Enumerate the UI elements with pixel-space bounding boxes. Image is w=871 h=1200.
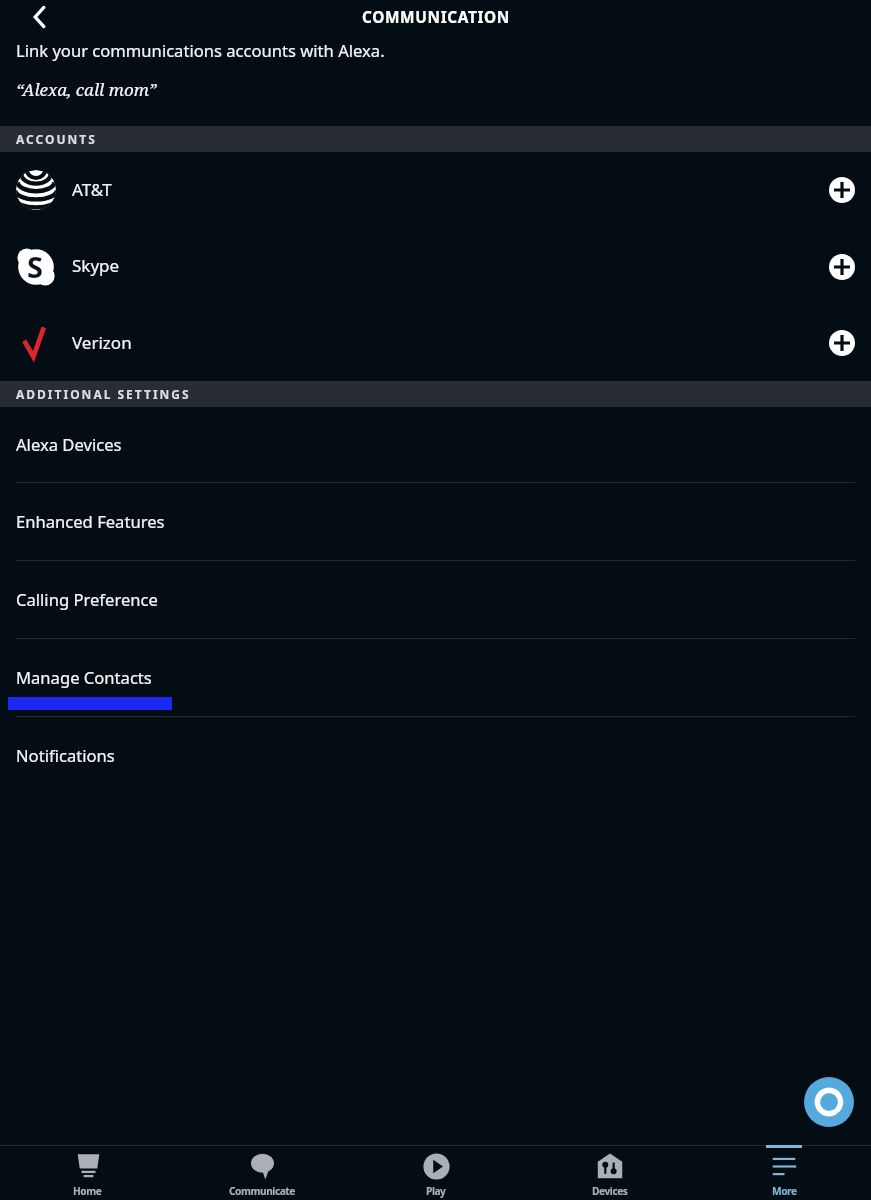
- staticText: “Alexa, call mom”: [16, 78, 157, 101]
- staticText: Skype: [72, 254, 120, 277]
- staticText: ACCOUNTS: [16, 131, 97, 147]
- button[interactable]: Devices: [523, 1146, 697, 1200]
- button[interactable]: Enhanced Features: [0, 483, 871, 561]
- button[interactable]: AT&T: [0, 152, 871, 228]
- staticText: Manage Contacts: [16, 666, 152, 689]
- button[interactable]: Add AT&T: [829, 177, 855, 203]
- staticText: AT&T: [72, 178, 112, 201]
- button[interactable]: More: [697, 1146, 871, 1200]
- staticText: Alexa Devices: [16, 433, 122, 456]
- button[interactable]: Verizon: [0, 305, 871, 381]
- button[interactable]: Notifications: [0, 717, 871, 795]
- staticText: Communicate: [229, 1184, 295, 1198]
- button[interactable]: Back: [20, 0, 60, 34]
- staticText: Enhanced Features: [16, 510, 165, 533]
- button[interactable]: Calling Preference: [0, 561, 871, 639]
- staticText: Calling Preference: [16, 588, 158, 611]
- button[interactable]: Alexa Devices: [0, 407, 871, 483]
- button[interactable]: S: [0, 228, 871, 305]
- staticText: Link your communications accounts with A…: [16, 39, 385, 62]
- staticText: ADDITIONAL SETTINGS: [16, 386, 191, 402]
- button[interactable]: Play: [349, 1146, 523, 1200]
- staticText: Home: [73, 1184, 102, 1198]
- staticText: COMMUNICATION: [362, 7, 510, 28]
- staticText: Devices: [592, 1184, 628, 1198]
- staticText: More: [772, 1184, 797, 1198]
- staticText: Verizon: [72, 331, 132, 354]
- button[interactable]: Add Skype: [829, 254, 855, 280]
- button[interactable]: Add Verizon: [829, 330, 855, 356]
- staticText: S: [27, 247, 43, 286]
- staticText: Play: [426, 1184, 446, 1198]
- button[interactable]: Alexa: [804, 1077, 854, 1127]
- button[interactable]: Home: [0, 1146, 175, 1200]
- button[interactable]: Communicate: [175, 1146, 349, 1200]
- staticText: Notifications: [16, 744, 115, 767]
- button[interactable]: Manage Contacts: [0, 639, 871, 717]
